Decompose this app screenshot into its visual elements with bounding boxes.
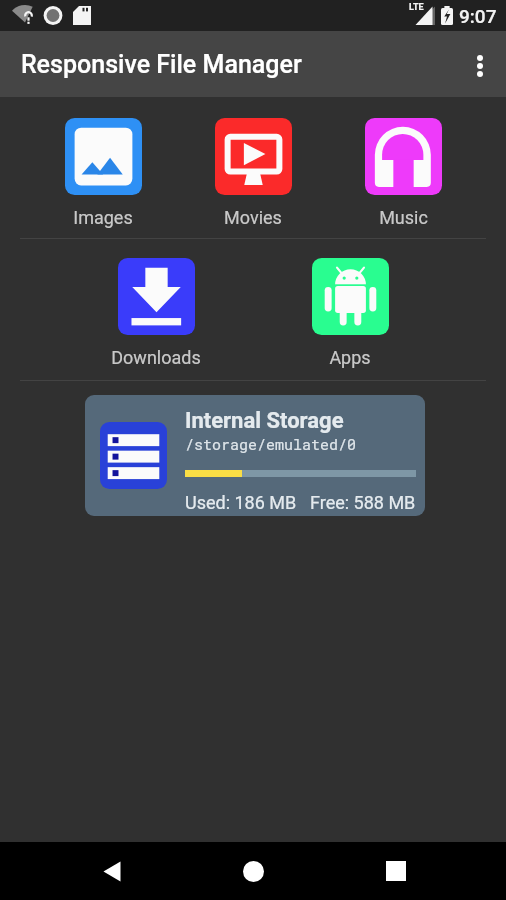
button[interactable]: More options — [458, 40, 506, 88]
staticText: Apps — [329, 347, 371, 368]
staticText: LTE — [409, 2, 424, 13]
staticText: Downloads — [111, 347, 201, 368]
button[interactable]: Images — [56, 118, 150, 228]
button[interactable]: Internal Storage — [85, 395, 425, 516]
staticText: Music — [379, 207, 428, 228]
button[interactable]: Recents — [365, 842, 423, 900]
staticText: Movies — [224, 207, 282, 228]
button[interactable]: Movies — [206, 118, 300, 228]
staticText: Internal Storage — [185, 408, 344, 434]
button[interactable]: Home — [224, 842, 282, 900]
staticText: Responsive File Manager — [21, 50, 302, 79]
staticText: Free: 588 MB — [310, 492, 416, 513]
staticText: Used: 186 MB — [185, 492, 297, 513]
staticText: Images — [73, 207, 133, 228]
button[interactable]: Music — [356, 118, 450, 228]
staticText: /storage/emulated/0 — [185, 434, 357, 454]
staticText: 9:07 — [459, 5, 497, 27]
button[interactable]: Apps — [303, 258, 397, 368]
button[interactable]: Back — [83, 842, 141, 900]
button[interactable]: Downloads — [109, 258, 203, 368]
